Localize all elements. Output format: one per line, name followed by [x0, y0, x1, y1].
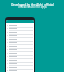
staticText: Developed by the Abhi, official [11, 3, 54, 7]
button[interactable] [7, 46, 33, 50]
button[interactable] [7, 63, 33, 67]
button[interactable] [7, 60, 33, 64]
button[interactable] [7, 42, 33, 46]
button[interactable] [7, 67, 33, 71]
button[interactable] [7, 32, 33, 36]
button[interactable] [7, 25, 33, 29]
staticText: official source for apps [18, 5, 47, 9]
button[interactable] [7, 35, 33, 39]
button[interactable] [7, 53, 33, 57]
button[interactable] [7, 49, 33, 53]
button[interactable] [7, 28, 33, 32]
button[interactable] [7, 70, 33, 72]
button[interactable] [7, 39, 33, 43]
button[interactable] [7, 56, 33, 60]
